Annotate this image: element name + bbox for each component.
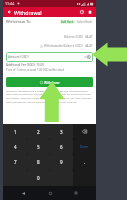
staticText: Currently, Springbit and E-Wallet withdr… bbox=[6, 89, 93, 103]
button[interactable]: Home bbox=[86, 8, 94, 16]
staticText: 8 bbox=[37, 159, 40, 165]
staticText: 4 bbox=[14, 144, 17, 150]
staticText: Withdrawable Balance (USD) bbox=[44, 44, 83, 48]
button[interactable]: Add Bank bbox=[60, 20, 75, 24]
staticText: 9 bbox=[60, 159, 63, 165]
staticText: 1 bbox=[14, 129, 17, 135]
staticText: 7 bbox=[14, 159, 17, 165]
staticText: Additional Fee (SGD): 15.00 bbox=[6, 63, 44, 67]
staticText: Amount (USD) bbox=[8, 55, 29, 59]
button[interactable]: Transaction history bbox=[78, 8, 86, 16]
staticText: 2 bbox=[37, 129, 40, 135]
staticText: 44.47 bbox=[85, 44, 93, 48]
staticText: . bbox=[84, 159, 86, 165]
button[interactable]: Recent apps bbox=[70, 187, 82, 199]
staticText: Price of 1 coin is around 1.00 USD withi… bbox=[6, 68, 65, 72]
staticText: Done bbox=[80, 145, 89, 149]
button[interactable]: Back bbox=[17, 187, 29, 199]
button[interactable]: 4 bbox=[3, 139, 27, 154]
staticText: 5 bbox=[37, 144, 40, 150]
button[interactable]: 3 bbox=[50, 124, 73, 139]
staticText: Withdraw bbox=[44, 80, 60, 85]
button[interactable]: 5 bbox=[27, 139, 50, 154]
button[interactable]: 7 bbox=[3, 154, 27, 170]
staticText: Withdrawal bbox=[14, 9, 42, 16]
button[interactable]: 9 bbox=[50, 154, 73, 170]
button[interactable]: Withdraw bbox=[6, 77, 93, 87]
button[interactable]: Done bbox=[73, 139, 96, 154]
button[interactable]: Amount (USD) bbox=[6, 52, 93, 62]
staticText: Select Bank bbox=[77, 20, 93, 24]
button[interactable]: 2 bbox=[27, 124, 50, 139]
button[interactable]: Backspace bbox=[73, 124, 96, 139]
button[interactable]: 6 bbox=[50, 139, 73, 154]
staticText: Add Bank bbox=[61, 20, 74, 24]
staticText: Withdraw To bbox=[6, 19, 31, 25]
other: Backspace bbox=[82, 129, 87, 134]
button[interactable]: 8 bbox=[27, 154, 50, 170]
staticText: 0 bbox=[37, 175, 40, 181]
button[interactable]: 0 bbox=[27, 170, 50, 186]
staticText: Balance (USD) bbox=[64, 35, 83, 39]
staticText: 6 bbox=[60, 144, 63, 150]
button[interactable]: 1 bbox=[3, 124, 27, 139]
button[interactable]: . bbox=[73, 154, 96, 170]
button[interactable]: Select Bank bbox=[77, 20, 93, 24]
staticText: 3 bbox=[60, 129, 63, 135]
button[interactable]: Home bbox=[44, 187, 56, 199]
button[interactable]: Back bbox=[5, 8, 13, 16]
staticText: 11:44 bbox=[5, 1, 15, 6]
staticText: 44.47 bbox=[85, 35, 93, 39]
